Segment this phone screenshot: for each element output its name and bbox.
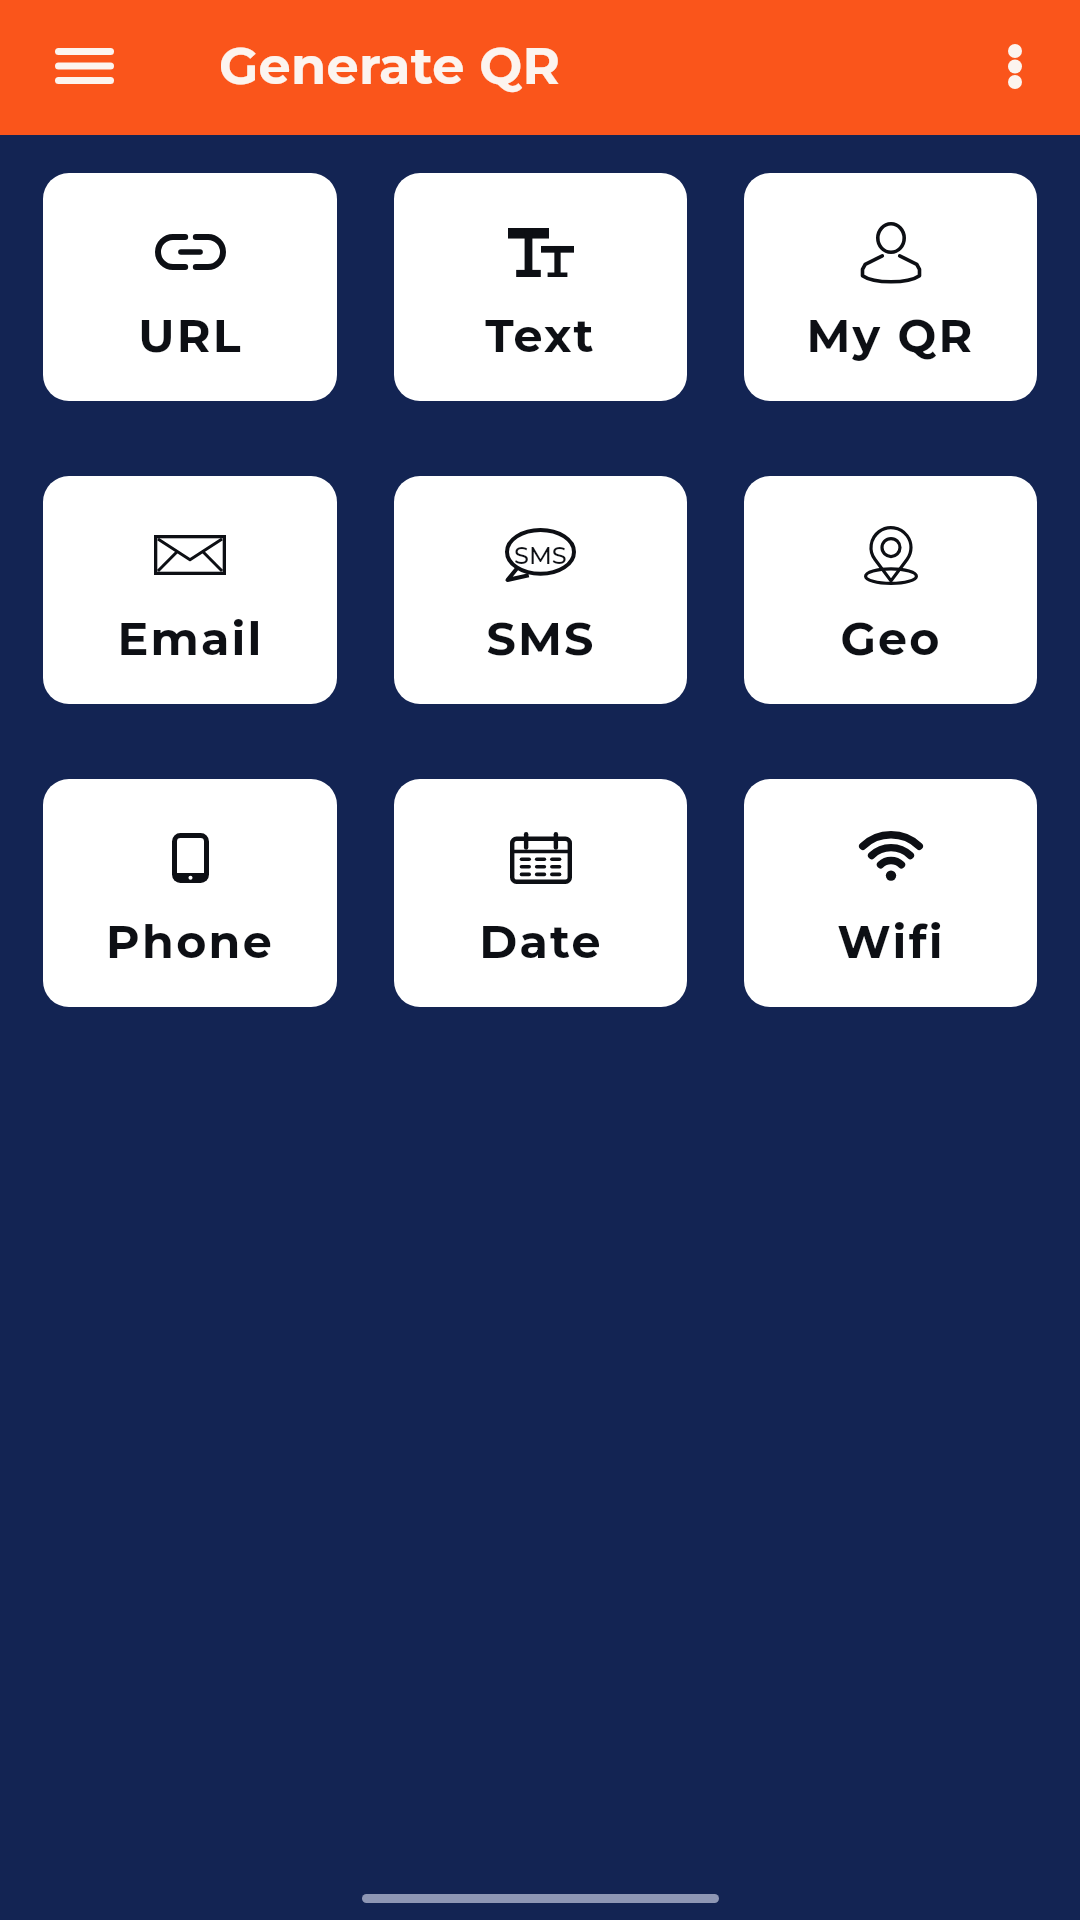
button[interactable]: My QR xyxy=(744,173,1037,401)
button[interactable]: Phone xyxy=(43,779,337,1007)
staticText: My QR xyxy=(806,307,975,363)
button[interactable]: Date xyxy=(394,779,687,1007)
button[interactable]: Wifi xyxy=(744,779,1037,1007)
staticText: Email xyxy=(117,610,264,666)
button[interactable]: SMS xyxy=(394,476,687,704)
button[interactable]: Email xyxy=(43,476,337,704)
button[interactable]: Geo xyxy=(744,476,1037,704)
staticText: Geo xyxy=(840,610,942,666)
button[interactable]: Text xyxy=(394,173,687,401)
staticText: SMS xyxy=(514,541,567,570)
staticText: Text xyxy=(485,307,596,363)
staticText: SMS xyxy=(486,610,596,666)
button[interactable]: More options xyxy=(969,20,1061,112)
staticText: Date xyxy=(479,913,603,969)
staticText: Phone xyxy=(106,913,274,969)
button[interactable]: Open navigation menu xyxy=(38,20,130,112)
button[interactable]: URL xyxy=(43,173,337,401)
staticText: Wifi xyxy=(837,913,945,969)
staticText: Generate QR xyxy=(219,35,561,97)
staticText: URL xyxy=(138,307,243,363)
